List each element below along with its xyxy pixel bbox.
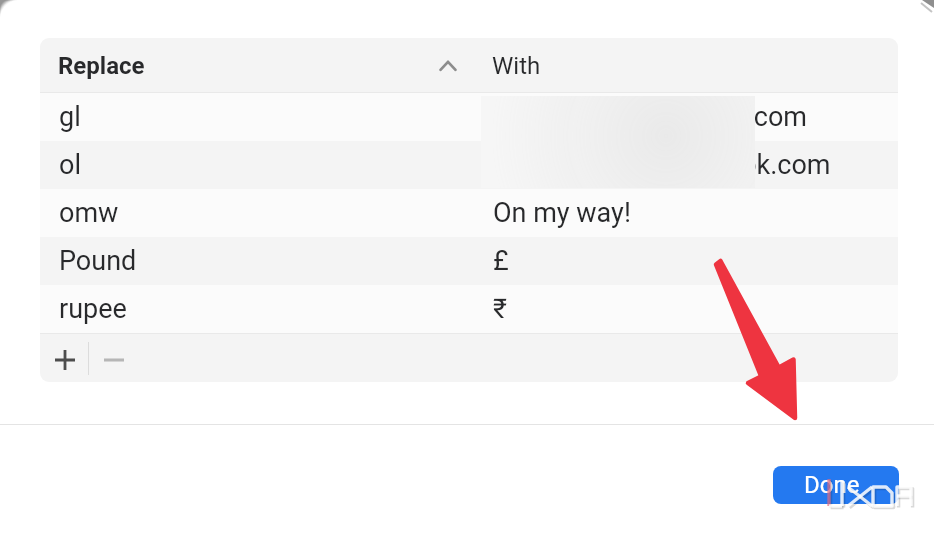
button[interactable]: rupee xyxy=(40,285,898,333)
button[interactable]: Done xyxy=(773,466,899,504)
staticText: somebodyi12@gmail.com xyxy=(493,101,808,133)
staticText: Done xyxy=(804,471,860,499)
staticText: £ xyxy=(493,245,509,277)
button[interactable]: ol xyxy=(40,141,898,189)
button[interactable]: Add replacement xyxy=(43,335,87,382)
staticText: gl xyxy=(59,101,81,133)
staticText: On my way! xyxy=(493,197,631,229)
staticText: rupee xyxy=(59,293,127,325)
staticText: ₹ xyxy=(493,293,507,325)
button[interactable]: Pound xyxy=(40,237,898,285)
staticText: ol xyxy=(59,149,81,181)
button[interactable]: Replace xyxy=(40,38,492,93)
button[interactable]: With xyxy=(492,38,898,93)
staticText: With xyxy=(492,52,541,80)
staticText: Replace xyxy=(58,52,145,80)
button[interactable]: gl xyxy=(40,93,898,141)
staticText: omw xyxy=(59,197,119,229)
button[interactable]: omw xyxy=(40,189,898,237)
button[interactable]: Remove replacement xyxy=(92,335,136,382)
staticText: Pound xyxy=(59,245,137,277)
staticText: somebodyi12@outlook.com xyxy=(493,149,831,181)
